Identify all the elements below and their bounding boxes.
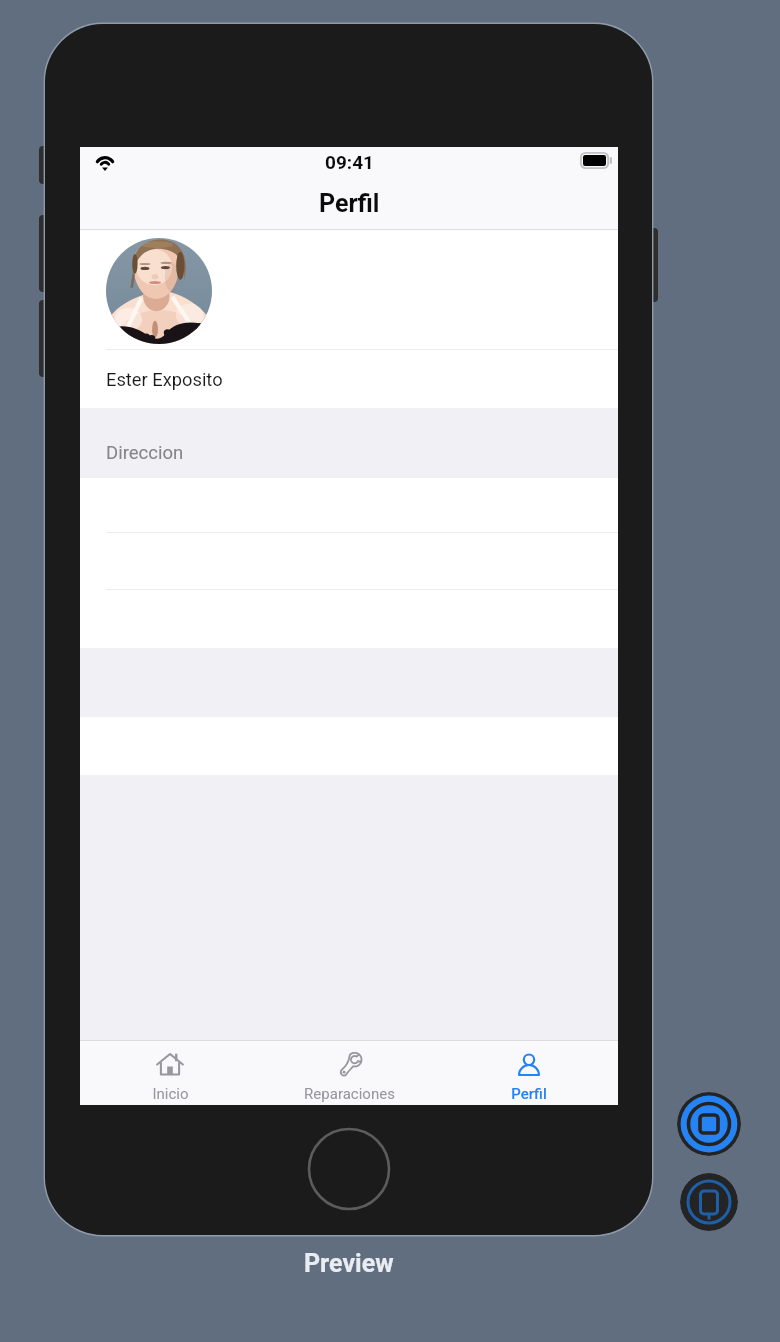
button[interactable]: Live preview bbox=[677, 1092, 741, 1156]
staticText: 09:41 bbox=[325, 151, 374, 173]
staticText: Direccion bbox=[106, 442, 184, 464]
staticText: Ester Exposito bbox=[106, 369, 223, 390]
staticText: Perfil bbox=[511, 1085, 547, 1103]
button[interactable]: Perfil bbox=[439, 1040, 618, 1105]
button[interactable]: Profile photo bbox=[80, 230, 618, 350]
staticText: Inicio bbox=[152, 1085, 189, 1103]
staticText: Preview bbox=[304, 1249, 394, 1278]
staticText: Reparaciones bbox=[304, 1085, 395, 1103]
button[interactable]: Inicio bbox=[80, 1040, 260, 1105]
staticText: Perfil bbox=[319, 189, 380, 218]
button[interactable]: Reparaciones bbox=[260, 1040, 439, 1105]
other: Wi-Fi bbox=[94, 151, 116, 171]
button[interactable]: Preview on device bbox=[680, 1173, 738, 1231]
button[interactable]: Ester Exposito bbox=[80, 350, 618, 408]
